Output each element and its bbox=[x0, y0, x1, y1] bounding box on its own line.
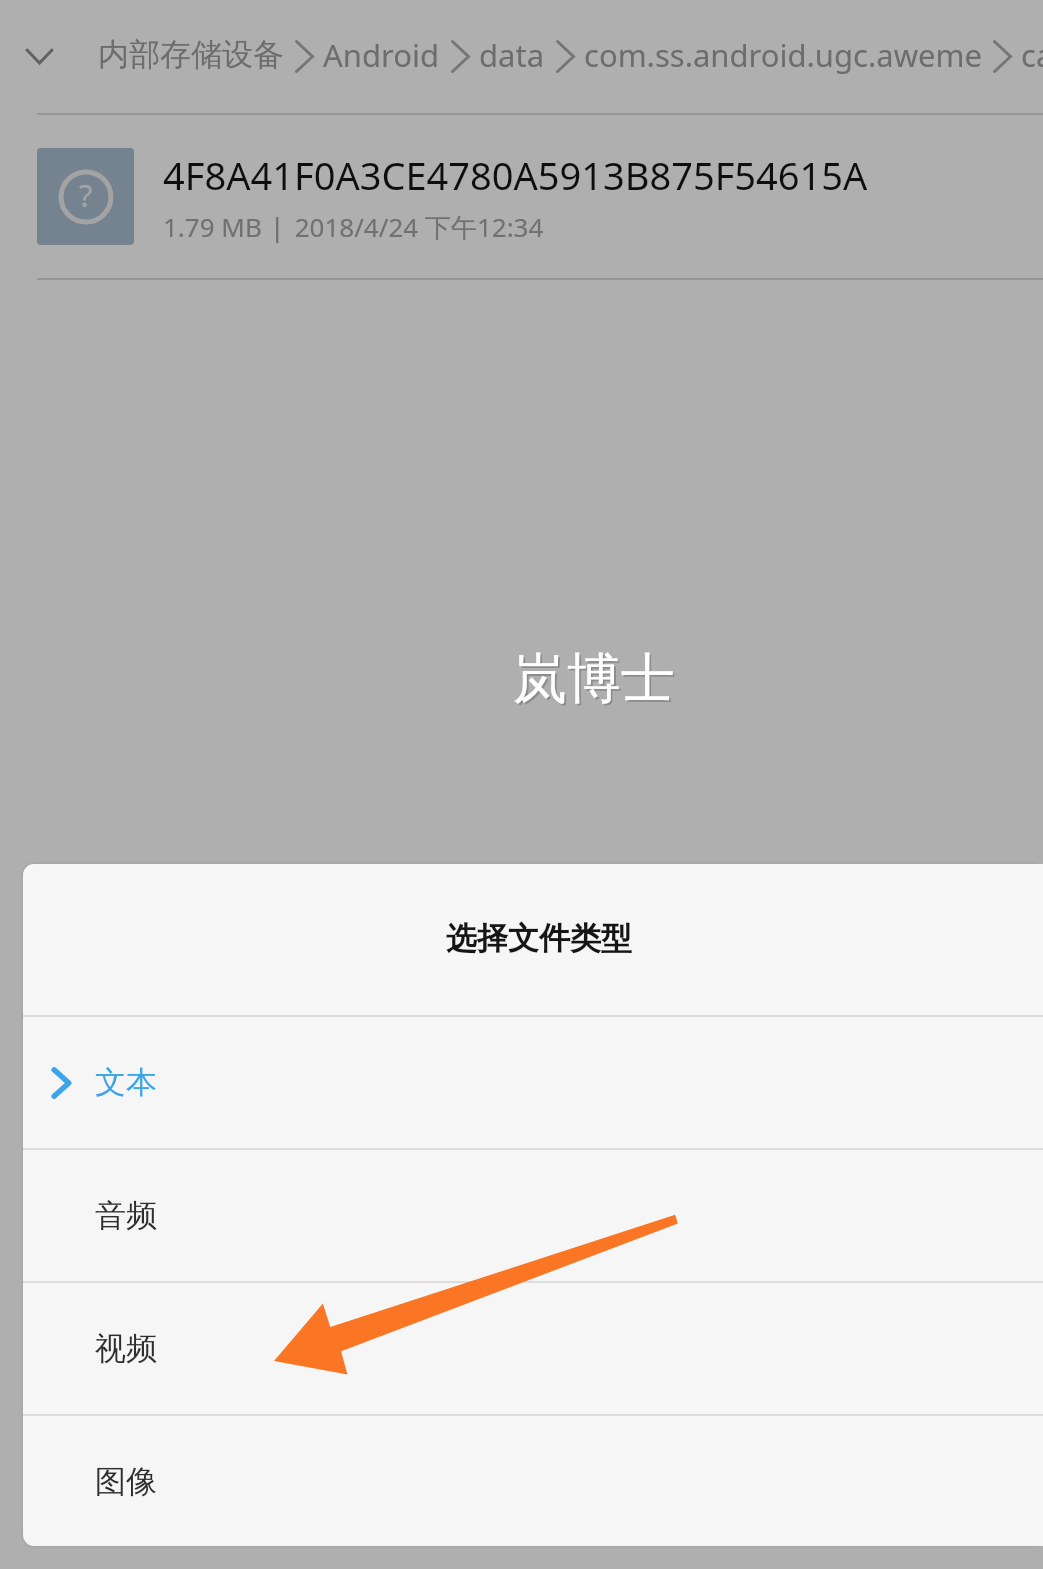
staticText: com.ss.android.ugc.aweme bbox=[584, 34, 982, 76]
button[interactable]: 图像 bbox=[23, 1416, 1043, 1546]
button[interactable]: ? bbox=[0, 115, 1043, 278]
staticText: ? bbox=[79, 174, 93, 216]
staticText: 1.79 MB ❘ 2018/4/24 下午12:34 bbox=[163, 209, 544, 245]
button[interactable]: 内部存储设备 bbox=[98, 0, 1043, 113]
staticText: ca bbox=[1021, 34, 1043, 76]
button[interactable]: Collapse path bbox=[0, 0, 98, 113]
staticText: Android bbox=[323, 34, 440, 76]
staticText: 图像 bbox=[95, 1462, 157, 1501]
staticText: data bbox=[479, 34, 545, 76]
staticText: 文本 bbox=[95, 1063, 157, 1102]
staticText: 音频 bbox=[95, 1196, 157, 1235]
button[interactable]: 视频 bbox=[23, 1283, 1043, 1414]
staticText: 选择文件类型 bbox=[446, 919, 632, 958]
staticText: 岚博士 bbox=[515, 647, 677, 715]
staticText: 4F8A41F0A3CE4780A5913B875F54615A bbox=[163, 149, 868, 201]
staticText: 岚博士 bbox=[513, 645, 675, 713]
staticText: 视频 bbox=[95, 1329, 157, 1368]
button[interactable]: 音频 bbox=[23, 1150, 1043, 1281]
button[interactable]: 文本 bbox=[23, 1017, 1043, 1148]
staticText: 内部存储设备 bbox=[98, 35, 284, 74]
